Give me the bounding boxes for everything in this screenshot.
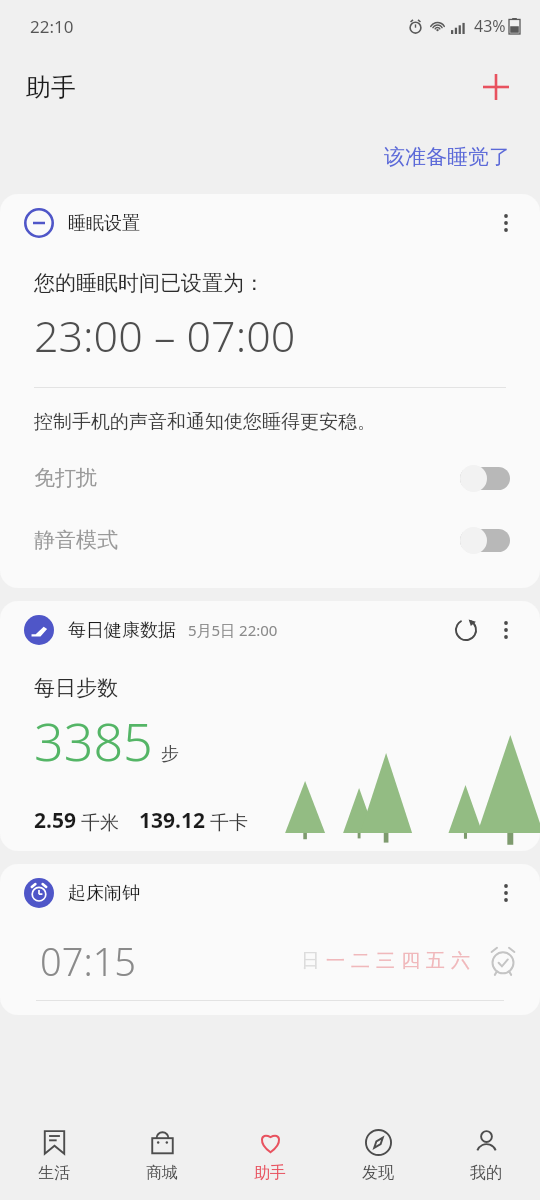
staticText: 五 — [426, 949, 445, 973]
staticText: 您的睡眠时间已设置为： — [34, 270, 265, 296]
other: Alarm — [488, 946, 518, 976]
button[interactable]: 助手 — [216, 1112, 324, 1200]
staticText: 二 — [351, 949, 370, 973]
staticText: 静音模式 — [34, 527, 118, 553]
staticText: 23:00 – 07:00 — [34, 306, 296, 365]
button[interactable]: 我的 — [432, 1112, 540, 1200]
staticText: 3385 — [34, 705, 153, 776]
staticText: 一 — [326, 949, 345, 973]
staticText: 控制手机的声音和通知使您睡得更安稳。 — [34, 410, 376, 434]
staticText: 43% — [474, 15, 506, 37]
button[interactable]: 该准备睡觉了 — [384, 144, 510, 170]
staticText: 生活 — [38, 1163, 70, 1183]
staticText: 商城 — [146, 1163, 178, 1183]
button[interactable]: 免打扰 — [0, 458, 540, 498]
staticText: 发现 — [362, 1163, 394, 1183]
button[interactable]: More options — [486, 873, 526, 913]
staticText: 我的 — [470, 1163, 502, 1183]
button[interactable]: 发现 — [324, 1112, 432, 1200]
staticText: 每日健康数据 — [68, 619, 176, 642]
button[interactable]: 商城 — [108, 1112, 216, 1200]
staticText: 起床闹钟 — [68, 882, 140, 905]
staticText: 步 — [161, 743, 179, 766]
staticText: 2.59 — [34, 806, 76, 835]
staticText: 每日步数 — [34, 675, 118, 701]
staticText: 07:15 — [40, 935, 137, 987]
button[interactable]: 07:15 — [0, 922, 540, 1000]
button[interactable]: 生活 — [0, 1112, 108, 1200]
button[interactable]: Add — [474, 65, 518, 109]
staticText: 139.12 — [139, 806, 205, 835]
staticText: 日 — [301, 949, 320, 973]
button[interactable]: Refresh — [446, 610, 486, 650]
staticText: 三 — [376, 949, 395, 973]
staticText: 助手 — [254, 1163, 286, 1183]
staticText: 免打扰 — [34, 465, 97, 491]
staticText: 睡眠设置 — [68, 212, 140, 235]
button[interactable]: More options — [486, 203, 526, 243]
staticText: 5月5日 22:00 — [188, 620, 278, 640]
button[interactable]: More options — [486, 610, 526, 650]
button[interactable]: 静音模式 — [0, 520, 540, 560]
staticText: 千卡 — [210, 811, 248, 835]
staticText: 千米 — [81, 811, 119, 835]
staticText: 助手 — [26, 72, 76, 103]
staticText: 四 — [401, 949, 420, 973]
staticText: 22:10 — [30, 15, 74, 38]
staticText: 六 — [451, 949, 470, 973]
